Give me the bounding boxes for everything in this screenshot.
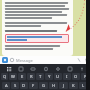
staticText: L (82, 83, 85, 89)
staticText: Q (3, 74, 7, 80)
button[interactable]: Y (45, 73, 53, 80)
staticText: J (63, 83, 65, 89)
button[interactable]: Voice message (84, 58, 88, 62)
button[interactable]: S (11, 82, 19, 89)
staticText: Y (48, 74, 51, 80)
button[interactable]: T (36, 73, 44, 80)
button[interactable]: Stickers (66, 65, 73, 72)
staticText: P (84, 74, 87, 80)
button[interactable]: H (49, 82, 58, 89)
button[interactable] (2, 0, 73, 56)
button[interactable]: Emoji (10, 58, 14, 62)
staticText: F (32, 83, 35, 89)
button[interactable] (5, 34, 69, 43)
button[interactable]: E (18, 73, 26, 80)
button[interactable]: Apps (5, 65, 12, 72)
staticText: I (66, 74, 68, 80)
staticText: D (22, 83, 26, 89)
staticText: A (5, 83, 8, 89)
button[interactable]: I (63, 73, 71, 80)
button[interactable]: O (72, 73, 80, 80)
button[interactable]: Search (17, 65, 24, 72)
button[interactable]: J (59, 82, 68, 89)
button[interactable]: GIF (29, 65, 36, 72)
button[interactable]: A (2, 82, 10, 89)
button[interactable]: Attach (77, 58, 81, 62)
staticText: K (72, 83, 75, 89)
staticText: H (52, 83, 56, 89)
button[interactable]: K (69, 82, 78, 89)
button[interactable]: D (20, 82, 28, 89)
staticText: E (21, 74, 24, 80)
button[interactable]: Settings (54, 65, 61, 72)
staticText: T (39, 74, 42, 80)
button[interactable]: Clipboard (42, 65, 49, 72)
button[interactable]: Bot menu (2, 57, 8, 63)
staticText: S (14, 83, 17, 89)
staticText: U (56, 74, 60, 80)
button[interactable]: Message (16, 58, 77, 63)
button[interactable]: L (79, 82, 88, 89)
button[interactable]: Voice input (78, 65, 85, 72)
button[interactable]: G (39, 82, 48, 89)
staticText: R (30, 74, 33, 80)
button[interactable]: F (29, 82, 38, 89)
button[interactable]: P (81, 73, 89, 80)
staticText: O (74, 74, 78, 80)
button[interactable]: U (54, 73, 62, 80)
button[interactable]: Q (1, 73, 8, 80)
staticText: G (42, 83, 46, 89)
button[interactable]: R (27, 73, 35, 80)
staticText: W (11, 74, 15, 80)
button[interactable]: W (9, 73, 17, 80)
